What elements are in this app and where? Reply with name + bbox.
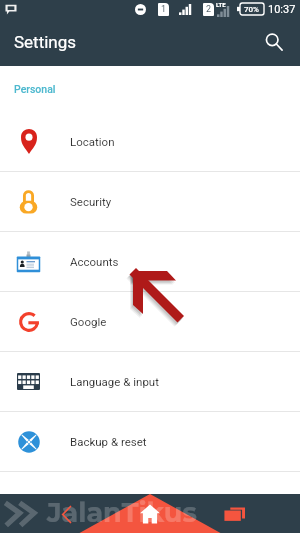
staticText: JalanTikus <box>47 496 197 529</box>
button[interactable]: Google <box>0 292 300 352</box>
staticText: Google <box>70 315 107 328</box>
button[interactable]: Home <box>135 499 165 529</box>
button[interactable]: Recents <box>220 500 248 528</box>
button[interactable]: Location <box>0 112 300 172</box>
staticText: 1 <box>161 4 167 15</box>
staticText: 2 <box>206 4 212 15</box>
button[interactable]: Search <box>256 24 292 60</box>
staticText: Location <box>70 135 115 148</box>
button[interactable]: Accounts <box>0 232 300 292</box>
staticText: Settings <box>14 32 77 52</box>
button[interactable]: Language & input <box>0 352 300 412</box>
staticText: Accounts <box>70 255 119 268</box>
staticText: 70% <box>244 5 259 14</box>
button[interactable]: Back <box>52 500 80 528</box>
staticText: Backup & reset <box>70 435 147 448</box>
staticText: Security <box>70 195 112 208</box>
staticText: LTE <box>216 1 226 8</box>
button[interactable]: Security <box>0 172 300 232</box>
staticText: Personal <box>14 83 56 95</box>
button[interactable]: Backup & reset <box>0 412 300 472</box>
staticText: 10:37 <box>268 3 296 16</box>
staticText: Language & input <box>70 375 159 388</box>
